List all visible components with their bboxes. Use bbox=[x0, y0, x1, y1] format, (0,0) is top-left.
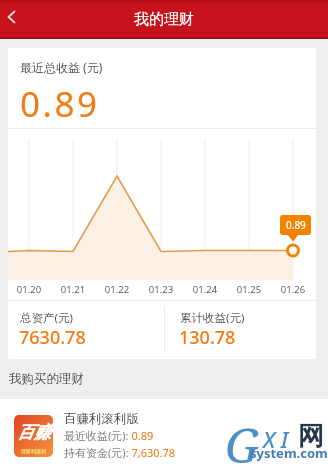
staticText: 我的理财 bbox=[134, 10, 194, 29]
staticText: 我购买的理财 bbox=[9, 371, 84, 387]
staticText: 累计收益(元) bbox=[180, 310, 245, 326]
staticText: 01.24 bbox=[183, 283, 227, 296]
staticText: 01.26 bbox=[271, 283, 315, 296]
staticText: 持有资金(元): 7,630.78 bbox=[64, 445, 176, 460]
staticText: system.com bbox=[250, 444, 328, 462]
staticText: 0.89 bbox=[286, 218, 306, 232]
staticText: 0.89 bbox=[20, 80, 100, 128]
staticText: 01.21 bbox=[51, 283, 95, 296]
staticText: G bbox=[225, 412, 260, 469]
staticText: 百赚利滚利版 bbox=[64, 411, 139, 427]
staticText: 01.25 bbox=[227, 283, 271, 296]
staticText: 最近收益(元): 0.89 bbox=[64, 428, 154, 443]
button[interactable] bbox=[0, 0, 36, 39]
staticText: 01.22 bbox=[95, 283, 139, 296]
staticText: 网 bbox=[298, 420, 324, 453]
staticText: 总资产(元) bbox=[20, 310, 73, 326]
staticText: X I bbox=[263, 424, 289, 454]
button[interactable]: 百赚 bbox=[0, 399, 328, 469]
staticText: 最近总收益 (元) bbox=[20, 59, 103, 75]
staticText: 7630.78 bbox=[19, 325, 86, 350]
staticText: 01.20 bbox=[7, 283, 51, 296]
staticText: 理财利滚利 bbox=[21, 448, 46, 454]
staticText: 01.23 bbox=[139, 283, 183, 296]
staticText: 130.78 bbox=[179, 325, 236, 350]
staticText: 百赚 bbox=[17, 422, 51, 443]
